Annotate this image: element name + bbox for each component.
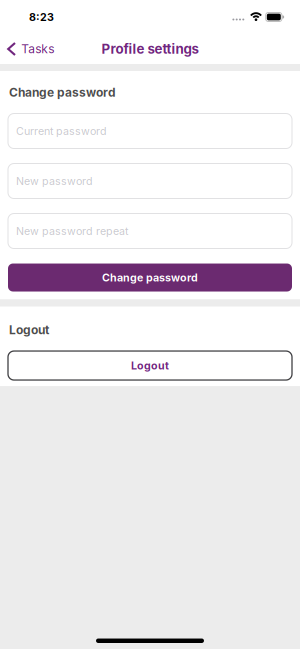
staticText: New password repeat: [16, 225, 128, 237]
staticText: Logout: [9, 322, 49, 337]
button[interactable]: Logout: [8, 351, 292, 380]
staticText: Current password: [16, 125, 107, 137]
staticText: New password: [16, 175, 93, 187]
staticText: Logout: [131, 359, 169, 372]
staticText: Profile settings: [101, 41, 198, 57]
staticText: Change password: [9, 85, 116, 99]
button[interactable]: Change password: [8, 263, 292, 291]
button[interactable]: Tasks: [0, 34, 62, 64]
staticText: Change password: [102, 271, 198, 284]
staticText: Tasks: [21, 42, 54, 56]
staticText: 8:23: [29, 10, 54, 23]
